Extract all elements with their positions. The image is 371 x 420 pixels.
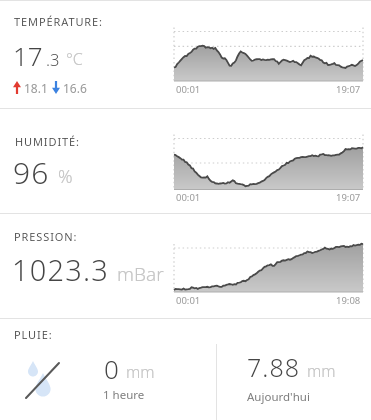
staticText: PRESSION: [14,229,78,244]
staticText: .3 [46,48,60,70]
staticText: mBar [117,261,164,287]
staticText: HUMIDITÉ: [15,134,80,149]
staticText: 1023.3 [12,250,110,289]
staticText: PLUIE: [14,327,53,342]
staticText: % [58,164,73,189]
staticText: TEMPÉRATURE: [14,14,103,29]
staticText: 1 heure [103,387,145,403]
staticText: 0 [104,351,119,386]
staticText: 17 [13,38,43,73]
staticText: 18.1 [24,80,48,96]
staticText: Aujourd'hui [247,389,310,405]
staticText: 00:01 [176,83,201,96]
staticText: 00:01 [176,294,201,307]
staticText: 19:08 [336,294,361,307]
staticText: mm [126,361,155,383]
staticText: 19:07 [336,191,361,204]
staticText: 96 [13,152,50,193]
staticText: 16.6 [63,80,87,96]
staticText: °C [66,48,83,70]
staticText: 7.88 [247,350,300,384]
staticText: 19:07 [336,83,361,96]
staticText: 00:01 [176,191,201,204]
staticText: mm [307,360,336,382]
